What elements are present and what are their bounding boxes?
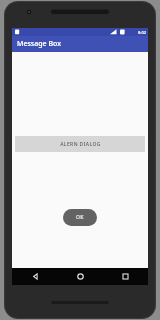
button[interactable]: ALERN DIALOG	[15, 136, 145, 152]
button[interactable]: OK	[63, 209, 97, 226]
button[interactable]: Recent apps	[103, 268, 148, 285]
button[interactable]: Home	[58, 268, 103, 285]
staticText: ALERN DIALOG	[60, 141, 101, 148]
staticText: Message Box	[17, 39, 61, 49]
staticText: 8:02	[138, 30, 146, 35]
staticText: OK	[76, 214, 84, 221]
button[interactable]: Back	[12, 268, 58, 285]
